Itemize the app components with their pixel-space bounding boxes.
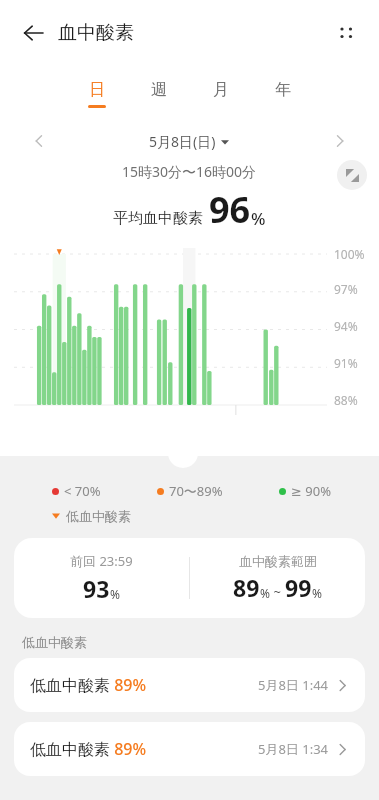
- staticText: 血中酸素: [58, 21, 134, 45]
- staticText: 低血中酸素: [66, 508, 131, 524]
- staticText: ~: [270, 583, 285, 601]
- staticText: %: [312, 585, 322, 601]
- staticText: 5月8日(日): [149, 132, 216, 151]
- staticText: 97%: [334, 281, 358, 297]
- staticText: 低血中酸素 89%: [30, 674, 147, 696]
- button[interactable]: 前回 23:59: [14, 538, 365, 618]
- staticText: 18:00: [238, 584, 271, 601]
- staticText: 月: [213, 80, 229, 100]
- staticText: ≥ 90%: [291, 482, 331, 500]
- staticText: 血中酸素範囲: [239, 553, 317, 569]
- staticText: 前回 23:59: [70, 552, 133, 570]
- staticText: 日: [89, 80, 105, 100]
- staticText: 5月8日 1:34: [258, 740, 329, 758]
- staticText: 年: [275, 80, 291, 100]
- staticText: 89: [233, 572, 260, 603]
- staticText: 5月8日 1:44: [258, 676, 329, 694]
- staticText: 70〜89%: [169, 482, 223, 500]
- button[interactable]: 年: [266, 78, 300, 110]
- staticText: 88%: [334, 392, 358, 408]
- button[interactable]: 5月8日(日): [143, 129, 235, 154]
- button[interactable]: 月: [204, 78, 238, 110]
- button[interactable]: 日: [80, 78, 114, 110]
- staticText: 94%: [334, 318, 358, 334]
- staticText: 91%: [334, 355, 358, 371]
- button[interactable]: 次の日: [325, 126, 355, 156]
- button[interactable]: 戻る: [16, 16, 50, 50]
- staticText: %: [260, 585, 270, 601]
- staticText: 週: [151, 80, 167, 100]
- button[interactable]: 低血中酸素 89%: [14, 658, 365, 712]
- staticText: 6:00: [96, 597, 120, 613]
- staticText: < 70%: [64, 482, 101, 500]
- button[interactable]: 低血中酸素 89%: [14, 722, 365, 776]
- staticText: 100%: [334, 246, 365, 262]
- staticText: %: [251, 207, 266, 230]
- staticText: 15時30分〜16時00分: [122, 162, 257, 181]
- staticText: 96: [209, 185, 251, 234]
- staticText: 99: [285, 572, 312, 603]
- button[interactable]: メニュー: [329, 16, 363, 50]
- staticText: 平均血中酸素: [113, 209, 203, 228]
- staticText: 93: [83, 573, 110, 604]
- staticText: 低血中酸素 89%: [30, 738, 147, 760]
- button[interactable]: 週: [142, 78, 176, 110]
- button[interactable]: 前の日: [24, 126, 54, 156]
- button[interactable]: 全画面表示: [337, 160, 367, 190]
- staticText: %: [110, 586, 120, 602]
- staticText: 24:00: [300, 597, 331, 613]
- staticText: 低血中酸素: [22, 634, 87, 650]
